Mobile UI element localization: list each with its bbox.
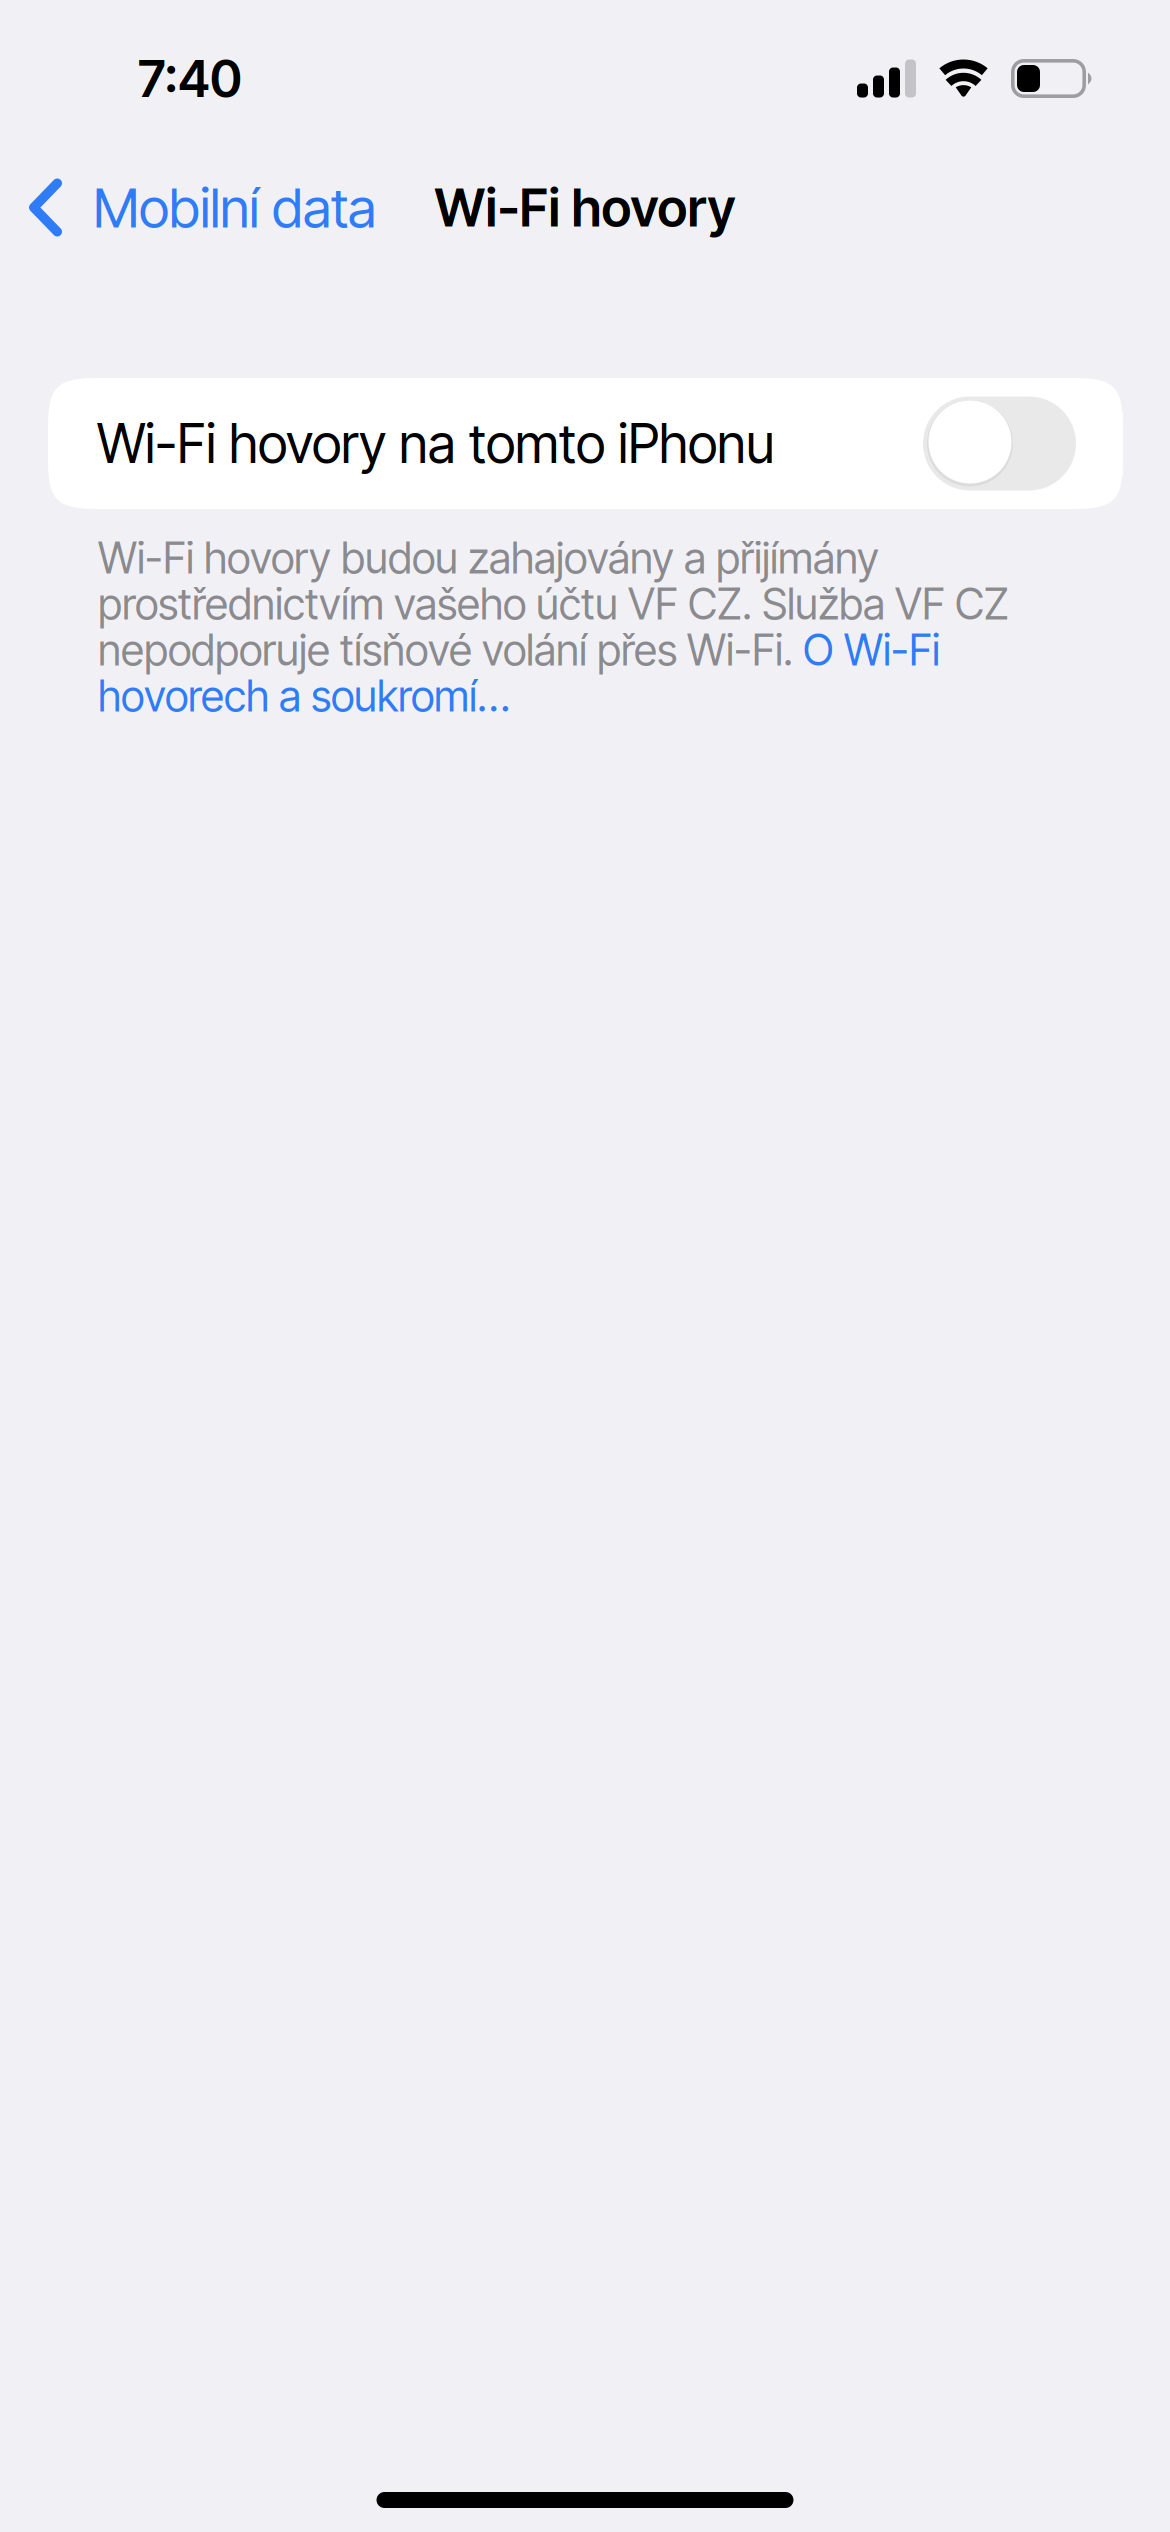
- button[interactable]: Mobilní data: [0, 156, 382, 258]
- staticText: nepodporuje tísňové volání přes Wi-Fi.: [98, 624, 803, 676]
- staticText: O Wi-Fi: [803, 624, 940, 676]
- button[interactable]: O Wi-Fi: [803, 624, 940, 676]
- staticText: prostřednictvím vašeho účtu VF CZ. Služb…: [98, 578, 1009, 630]
- staticText: Mobilní data: [93, 174, 376, 240]
- button[interactable]: Wi-Fi hovory na tomto iPhonu: [48, 378, 1123, 509]
- button[interactable]: hovorech a soukromí…: [98, 673, 510, 719]
- staticText: Wi-Fi hovory budou zahajovány a přijímán…: [98, 532, 879, 584]
- button[interactable]: Wi-Fi hovory na tomto iPhonu, vypnuto: [923, 396, 1076, 490]
- staticText: Wi-Fi hovory na tomto iPhonu: [97, 411, 774, 476]
- staticText: 7:40: [138, 48, 242, 109]
- staticText: Wi-Fi hovory: [434, 176, 735, 239]
- staticText: hovorech a soukromí…: [98, 670, 510, 722]
